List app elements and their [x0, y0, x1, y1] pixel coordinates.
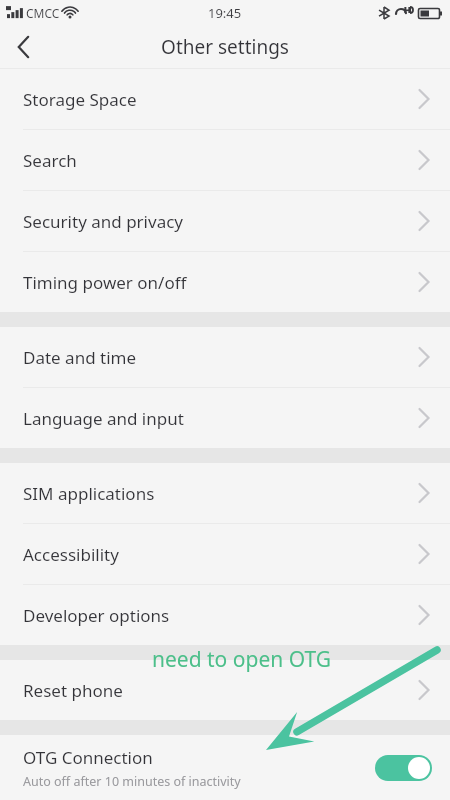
staticText: Search [23, 149, 77, 172]
button[interactable]: OTG Connection toggle, on [375, 755, 432, 781]
staticText: OTG Connection [23, 746, 153, 769]
staticText: 19:45 [208, 4, 242, 22]
button[interactable]: Date and time [0, 327, 450, 388]
button[interactable]: Timing power on/off [0, 252, 450, 312]
staticText: SIM applications [23, 482, 155, 505]
staticText: Security and privacy [23, 210, 184, 233]
staticText: Language and input [23, 407, 184, 430]
button[interactable]: Reset phone [0, 660, 450, 720]
button[interactable]: Back [0, 26, 48, 68]
staticText: Date and time [23, 346, 137, 369]
staticText: Reset phone [23, 679, 123, 702]
staticText: Timing power on/off [23, 271, 187, 294]
staticText: Auto off after 10 minutes of inactivity [23, 773, 241, 790]
button[interactable]: Storage Space [0, 69, 450, 130]
button[interactable]: Developer options [0, 585, 450, 645]
staticText: Storage Space [23, 88, 137, 111]
button[interactable]: OTG Connection [0, 735, 450, 800]
staticText: need to open OTG [152, 645, 332, 674]
button[interactable]: Accessibility [0, 524, 450, 585]
staticText: Developer options [23, 604, 170, 627]
staticText: Other settings [161, 34, 289, 60]
staticText: Accessibility [23, 543, 119, 566]
button[interactable]: SIM applications [0, 463, 450, 524]
button[interactable]: Security and privacy [0, 191, 450, 252]
button[interactable]: Language and input [0, 388, 450, 448]
staticText: CMCC [26, 5, 60, 21]
button[interactable]: Search [0, 130, 450, 191]
